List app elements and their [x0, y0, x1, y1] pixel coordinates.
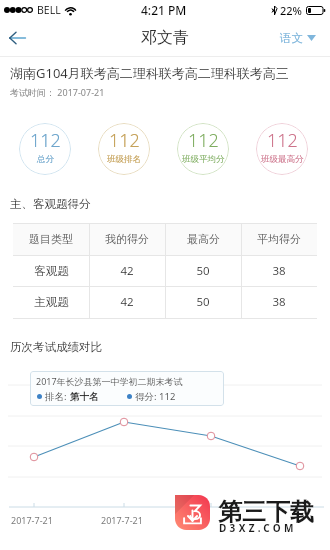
- button[interactable]: 语文: [272, 25, 330, 51]
- staticText: 第十名: [70, 391, 99, 403]
- staticText: 总分: [37, 154, 54, 165]
- staticText: 42: [120, 294, 134, 310]
- staticText: D3XZ.COM: [219, 521, 297, 535]
- staticText: 主观题: [34, 295, 69, 309]
- staticText: 2017-7-21: [101, 514, 143, 526]
- staticText: 第三下载: [218, 497, 314, 527]
- staticText: 主、客观题得分: [10, 197, 91, 211]
- staticText: 112: [109, 128, 140, 153]
- staticText: 112: [30, 128, 61, 153]
- staticText: 平均得分: [257, 232, 301, 246]
- button[interactable]: Back: [2, 23, 32, 53]
- staticText: 2017-7-21: [11, 514, 53, 526]
- staticText: 历次考试成绩对比: [10, 340, 102, 354]
- staticText: BELL: [37, 3, 61, 17]
- button[interactable]: 112: [177, 123, 229, 175]
- staticText: 邓文青: [141, 28, 189, 48]
- staticText: 班级最高分: [261, 154, 304, 165]
- staticText: 2017年长沙县第一中学初二期末考试: [36, 375, 183, 387]
- staticText: 38: [272, 294, 286, 310]
- staticText: 112: [267, 128, 298, 153]
- staticText: 50: [196, 263, 210, 279]
- staticText: 题目类型: [29, 232, 73, 246]
- staticText: 班级平均分: [182, 154, 225, 165]
- button[interactable]: 112: [19, 123, 71, 175]
- staticText: 我的得分: [105, 232, 149, 246]
- staticText: 湖南G104月联考高二理科联考高二理科联考高三: [10, 64, 289, 82]
- staticText: 112: [188, 128, 219, 153]
- staticText: 客观题: [34, 264, 69, 278]
- staticText: 得分: 112: [135, 390, 176, 403]
- staticText: 50: [196, 294, 210, 310]
- staticText: 班级排名: [107, 154, 141, 165]
- staticText: 排名:: [45, 390, 67, 403]
- staticText: 最高分: [187, 232, 220, 246]
- button[interactable]: 112: [256, 123, 308, 175]
- staticText: 考试时间： 2017-07-21: [10, 86, 105, 98]
- staticText: 42: [120, 263, 134, 279]
- staticText: 4:21 PM: [141, 2, 187, 18]
- staticText: 38: [272, 263, 286, 279]
- staticText: 语文: [280, 31, 303, 45]
- staticText: 22%: [280, 3, 302, 18]
- button[interactable]: 112: [98, 123, 150, 175]
